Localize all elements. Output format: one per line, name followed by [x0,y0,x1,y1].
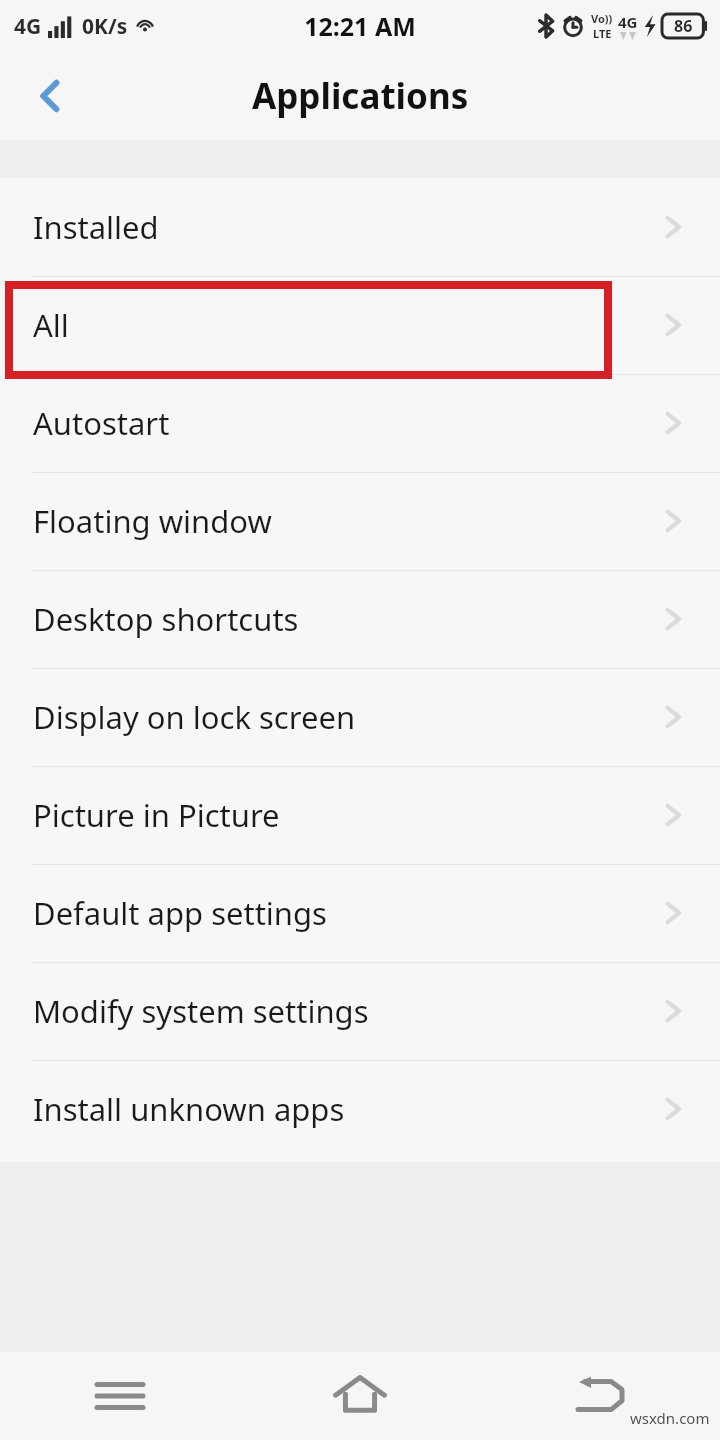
staticText: Desktop shortcuts [33,598,299,640]
button[interactable]: Autostart [0,374,720,472]
staticText: Autostart [33,402,170,444]
staticText: Floating window [33,500,272,542]
staticText: LTE [593,26,612,41]
button[interactable]: Recent apps [0,1352,240,1440]
button[interactable]: Back [480,1352,720,1440]
button[interactable]: All [0,276,720,374]
button[interactable]: Modify system settings [0,962,720,1060]
staticText: Picture in Picture [33,794,280,836]
button[interactable]: Install unknown apps [0,1060,720,1158]
staticText: All [33,304,69,346]
staticText: 4G [618,12,638,32]
button[interactable]: Back [20,66,80,126]
staticText: Vo)) [591,11,613,26]
staticText: 12:21 AM [304,9,416,43]
staticText: Applications [252,72,469,120]
button[interactable]: Picture in Picture [0,766,720,864]
button[interactable]: Display on lock screen [0,668,720,766]
staticText: Install unknown apps [33,1088,345,1130]
button[interactable]: Default app settings [0,864,720,962]
staticText: Display on lock screen [33,696,356,738]
staticText: wsxdn.com [630,1408,710,1428]
staticText: 0K/s [82,12,128,41]
button[interactable]: Floating window [0,472,720,570]
staticText: Default app settings [33,892,327,934]
button[interactable]: Home [240,1352,480,1440]
staticText: Installed [33,206,159,248]
staticText: Modify system settings [33,990,369,1032]
staticText: 4G [14,12,42,41]
staticText: 86 [674,15,693,37]
button[interactable]: Desktop shortcuts [0,570,720,668]
button[interactable]: Installed [0,178,720,276]
